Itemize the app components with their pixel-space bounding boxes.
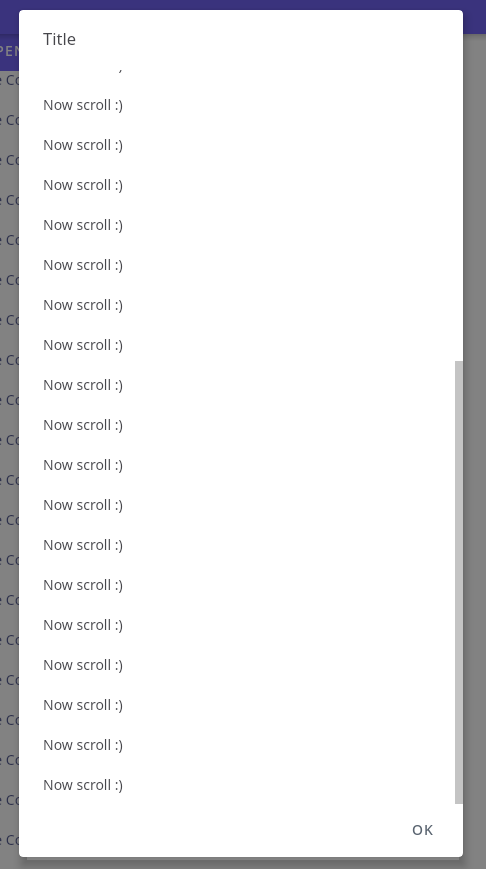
button[interactable]: Some Content: [0, 790, 85, 830]
button[interactable]: Now scroll :): [19, 295, 463, 335]
button[interactable]: Now scroll :): [19, 495, 463, 535]
staticText: Some Content: [0, 270, 59, 289]
staticText: Some Content: [0, 590, 59, 609]
staticText: Now scroll :): [43, 735, 123, 754]
button[interactable]: Now scroll :): [19, 455, 463, 495]
button[interactable]: Some Content: [0, 750, 85, 790]
button[interactable]: Now scroll :): [19, 95, 463, 135]
button[interactable]: Some Content: [0, 430, 85, 470]
staticText: Now scroll :): [43, 95, 123, 114]
staticText: Some Content: [0, 550, 59, 569]
staticText: Now scroll :): [43, 215, 123, 234]
button[interactable]: Now scroll :): [19, 415, 463, 455]
button[interactable]: Some Content: [0, 70, 85, 110]
button[interactable]: OPEN DIALOG: [0, 34, 118, 71]
staticText: Now scroll :): [43, 175, 123, 194]
staticText: Now scroll :): [43, 775, 123, 794]
staticText: Some Content: [0, 830, 59, 849]
staticText: Now scroll :): [43, 575, 123, 594]
staticText: OK: [412, 820, 434, 839]
button[interactable]: Some Content: [0, 590, 85, 630]
staticText: Some Content: [0, 310, 59, 329]
button[interactable]: Now scroll :): [19, 535, 463, 575]
staticText: Some Content: [0, 110, 59, 129]
staticText: Now scroll :): [43, 455, 123, 474]
staticText: OPEN DIALOG: [0, 41, 92, 60]
button[interactable]: Now scroll :): [19, 655, 463, 695]
button[interactable]: Now scroll :): [19, 735, 463, 775]
button[interactable]: Some Content: [0, 270, 85, 310]
staticText: Some Content: [0, 350, 59, 369]
staticText: Now scroll :): [43, 70, 123, 74]
button[interactable]: Now scroll :): [19, 615, 463, 655]
button[interactable]: Some Content: [0, 670, 85, 710]
button[interactable]: Some Content: [0, 150, 85, 190]
staticText: Some Content: [0, 150, 59, 169]
button[interactable]: Now scroll :): [19, 135, 463, 175]
button[interactable]: Some Content: [0, 510, 85, 550]
button[interactable]: Now scroll :): [19, 215, 463, 255]
button[interactable]: Now scroll :): [19, 175, 463, 215]
staticText: Some Content: [0, 390, 59, 409]
staticText: Some Content: [0, 510, 59, 529]
staticText: Now scroll :): [43, 255, 123, 274]
staticText: Title: [43, 27, 76, 49]
button[interactable]: OK: [394, 811, 452, 847]
staticText: Some Content: [0, 750, 59, 769]
staticText: Now scroll :): [43, 535, 123, 554]
staticText: Now scroll :): [43, 335, 123, 354]
staticText: Some Content: [0, 70, 59, 89]
button[interactable]: Some Content: [0, 310, 85, 350]
button[interactable]: Now scroll :): [19, 335, 463, 375]
button[interactable]: Now scroll :): [19, 695, 463, 735]
staticText: Some Content: [0, 710, 59, 729]
staticText: Some Content: [0, 430, 59, 449]
button[interactable]: Some Content: [0, 470, 85, 510]
staticText: Now scroll :): [43, 415, 123, 434]
staticText: Some Content: [0, 230, 59, 249]
button[interactable]: Now scroll :): [19, 375, 463, 415]
button[interactable]: Some Content: [0, 630, 85, 670]
button[interactable]: Some Content: [0, 710, 85, 750]
staticText: Some Content: [0, 670, 59, 689]
staticText: Now scroll :): [43, 695, 123, 714]
button[interactable]: Some Content: [0, 230, 85, 270]
staticText: Some Content: [0, 790, 59, 809]
staticText: Some Content: [0, 630, 59, 649]
button[interactable]: Now scroll :): [19, 255, 463, 295]
staticText: Now scroll :): [43, 375, 123, 394]
button[interactable]: Some Content: [0, 350, 85, 390]
staticText: Now scroll :): [43, 135, 123, 154]
staticText: Some Content: [0, 190, 59, 209]
button[interactable]: Some Content: [0, 390, 85, 430]
button[interactable]: Now scroll :): [19, 775, 463, 800]
button[interactable]: Some Content: [0, 110, 85, 150]
button[interactable]: Some Content: [0, 830, 85, 869]
button[interactable]: Some Content: [0, 190, 85, 230]
staticText: Now scroll :): [43, 615, 123, 634]
button[interactable]: Now scroll :): [19, 575, 463, 615]
button[interactable]: Some Content: [0, 550, 85, 590]
staticText: Now scroll :): [43, 655, 123, 674]
staticText: Some Content: [0, 470, 59, 489]
staticText: Now scroll :): [43, 495, 123, 514]
staticText: Now scroll :): [43, 295, 123, 314]
